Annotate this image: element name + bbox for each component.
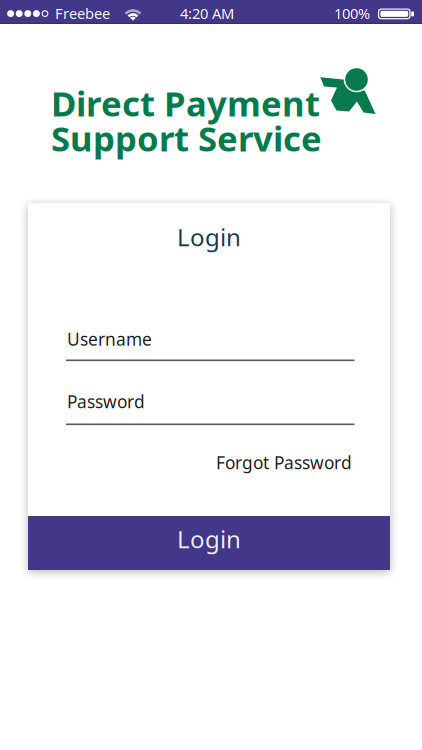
staticText: Password (67, 390, 145, 413)
button[interactable]: Password (66, 390, 354, 425)
staticText: Login (177, 221, 241, 253)
staticText: Forgot Password (216, 451, 352, 474)
button[interactable]: Forgot Password (216, 451, 352, 474)
button[interactable]: Login (28, 516, 390, 570)
staticText: Login (177, 523, 241, 555)
button[interactable]: Username (66, 327, 354, 361)
staticText: Support Service (51, 115, 322, 161)
staticText: 4:20 AM (180, 3, 234, 23)
staticText: 100% (334, 3, 370, 23)
staticText: Username (67, 327, 152, 350)
staticText: Freebee (55, 3, 110, 23)
staticText: Direct Payment (51, 80, 320, 126)
